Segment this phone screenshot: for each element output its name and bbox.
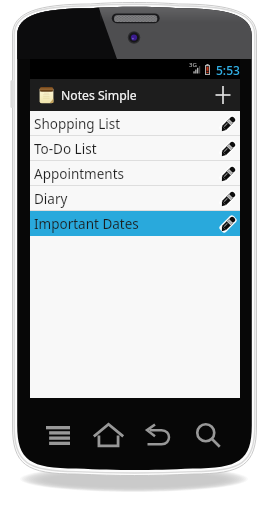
button[interactable]: Shopping List (30, 111, 240, 136)
button[interactable]: Appointments (30, 161, 240, 186)
staticText: Diary (34, 190, 68, 208)
staticText: Appointments (34, 165, 125, 183)
button[interactable]: Search (188, 415, 228, 455)
button[interactable]: To-Do List (30, 136, 240, 161)
button[interactable]: Add note (206, 79, 239, 111)
staticText: Shopping List (34, 115, 121, 133)
staticText: Notes Simple (61, 87, 137, 104)
staticText: To-Do List (34, 140, 97, 158)
staticText: Important Dates (34, 215, 139, 233)
button[interactable]: Menu (38, 415, 78, 455)
staticText: 3G (189, 61, 197, 69)
staticText: 5:53 (216, 62, 240, 78)
button[interactable]: Home (88, 415, 128, 455)
button[interactable]: Important Dates (30, 211, 240, 236)
button[interactable]: Back (138, 415, 178, 455)
button[interactable]: Diary (30, 186, 240, 211)
